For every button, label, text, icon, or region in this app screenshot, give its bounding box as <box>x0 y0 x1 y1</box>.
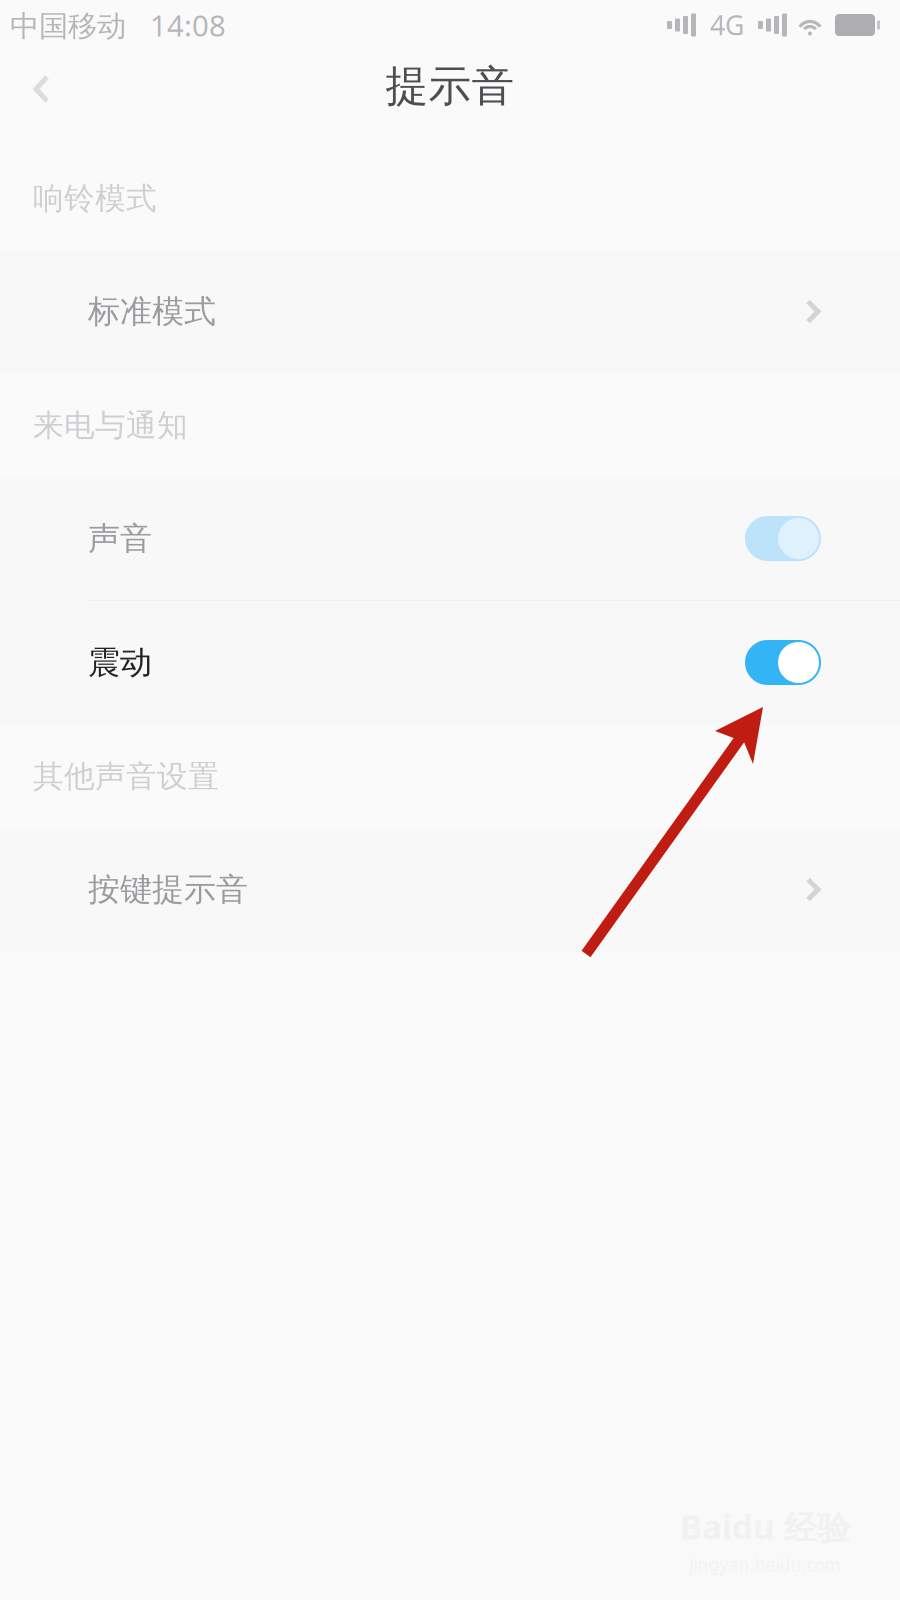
button[interactable]: 声音 <box>0 477 900 601</box>
staticText: 震动 <box>88 643 152 682</box>
staticText: 按键提示音 <box>88 870 248 909</box>
staticText: 4G <box>696 7 758 43</box>
staticText: 声音 <box>88 519 152 558</box>
button[interactable]: 标准模式 <box>0 250 900 374</box>
staticText: Baidu 经验 <box>680 1504 850 1549</box>
button[interactable]: Back <box>0 56 77 122</box>
staticText: 响铃模式 <box>33 180 157 217</box>
button[interactable]: 按键提示音 <box>0 828 900 952</box>
staticText: 提示音 <box>385 60 514 112</box>
staticText: 来电与通知 <box>33 407 188 444</box>
staticText: 其他声音设置 <box>33 758 219 795</box>
staticText: 标准模式 <box>88 292 216 331</box>
button[interactable]: 震动 <box>0 601 900 725</box>
staticText: 中国移动 14:08 <box>10 5 226 44</box>
